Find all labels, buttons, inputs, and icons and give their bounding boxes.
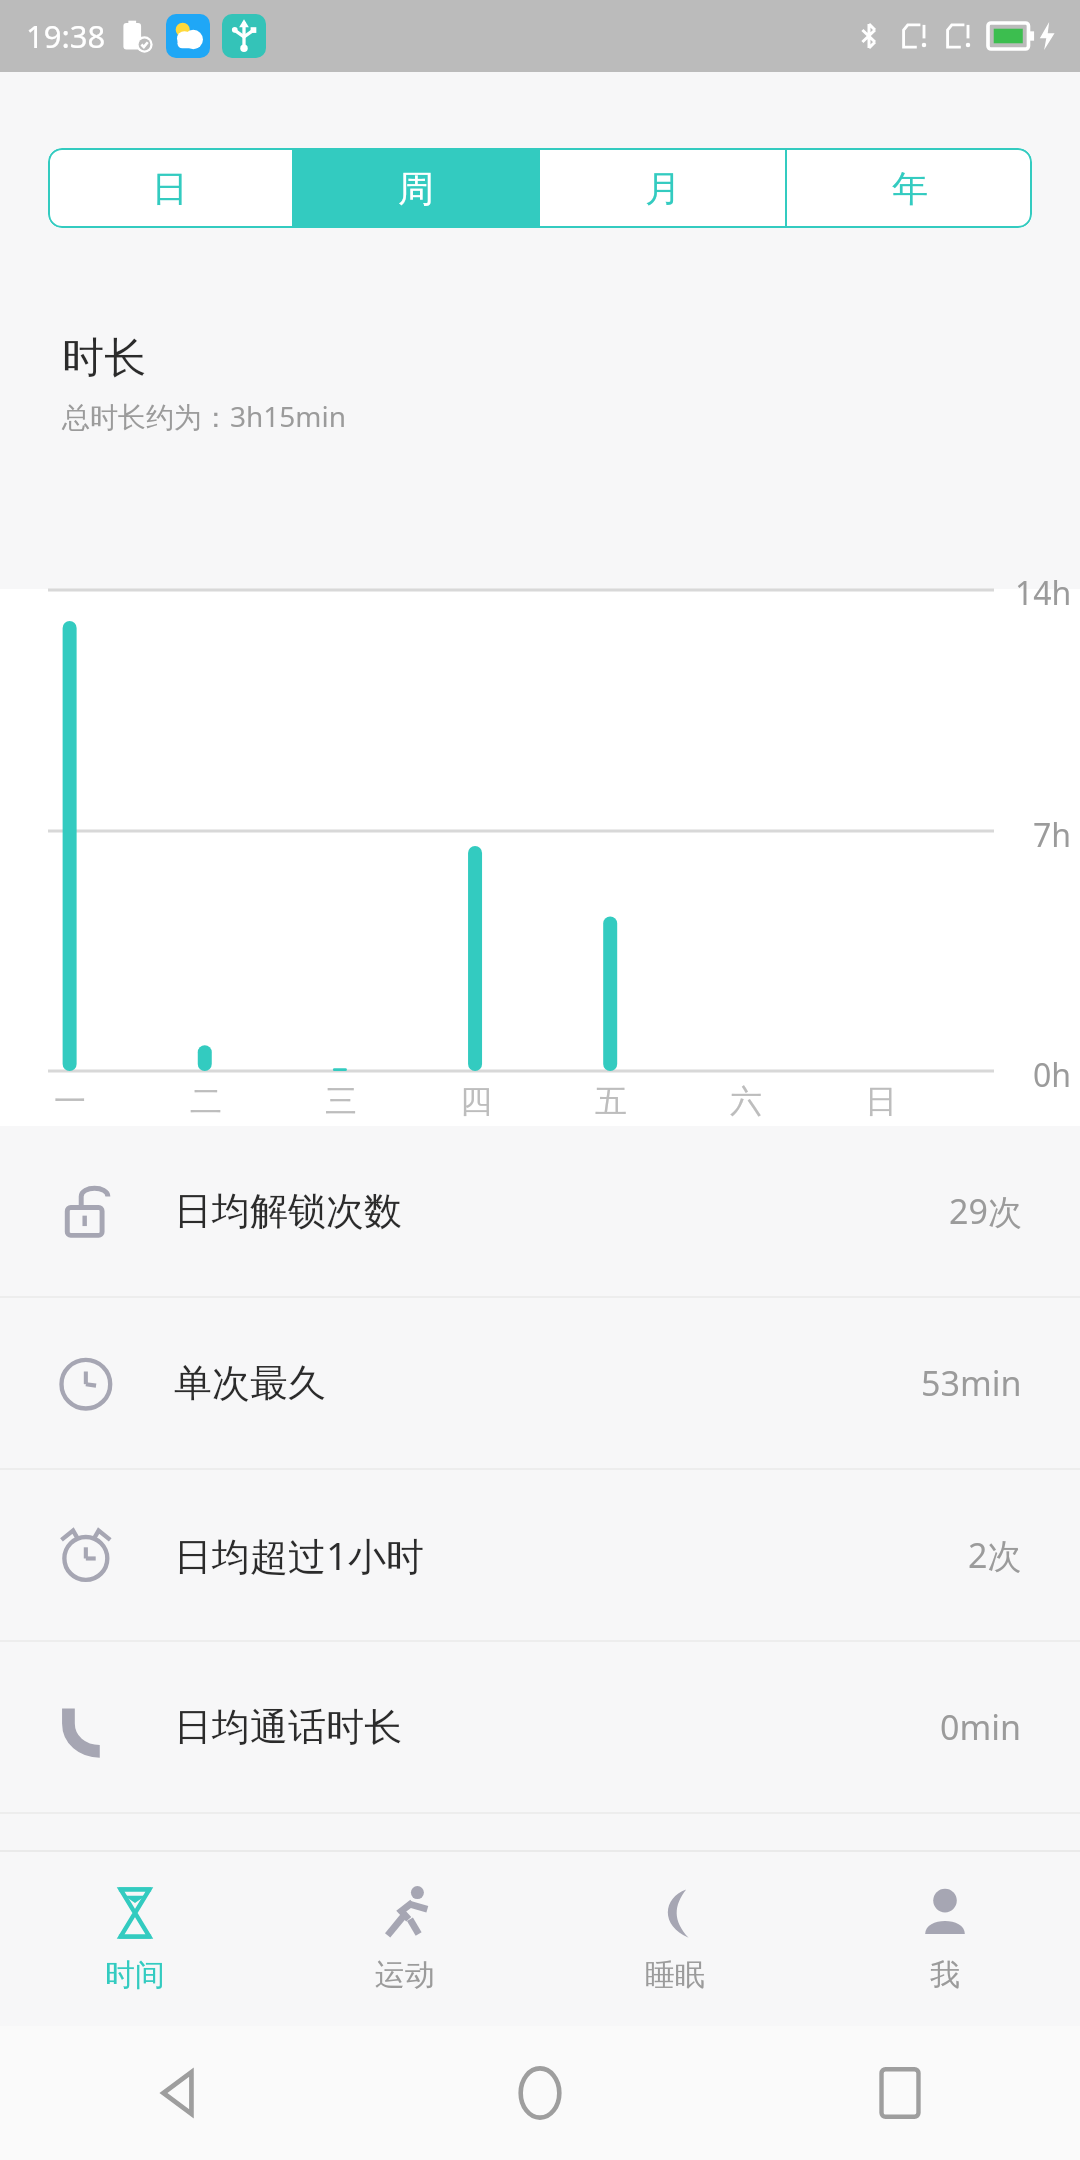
staticText: 单次最久 bbox=[174, 1359, 326, 1407]
button[interactable]: 日均解锁次数 bbox=[0, 1126, 1080, 1296]
button[interactable]: 睡眠 bbox=[540, 1850, 810, 2026]
staticText: 周 bbox=[398, 166, 434, 211]
staticText: 时间 bbox=[105, 1956, 165, 1994]
staticText: 14h bbox=[1015, 571, 1072, 615]
staticText: 六 bbox=[730, 1081, 762, 1121]
staticText: 总时长约为：3h15min bbox=[62, 397, 347, 435]
staticText: 睡眠 bbox=[645, 1956, 705, 1994]
staticText: 53min bbox=[921, 1360, 1022, 1406]
button[interactable]: 时间 bbox=[0, 1850, 270, 2026]
button[interactable]: 日均通话时长 bbox=[0, 1642, 1080, 1812]
staticText: 日 bbox=[152, 166, 188, 211]
staticText: 运动 bbox=[375, 1956, 435, 1994]
staticText: 时长 bbox=[62, 332, 146, 385]
staticText: 一 bbox=[54, 1081, 86, 1121]
staticText: 2次 bbox=[968, 1532, 1022, 1578]
button[interactable]: 单次最久 bbox=[0, 1298, 1080, 1468]
staticText: 日均解锁次数 bbox=[174, 1187, 402, 1235]
button[interactable]: 周 bbox=[294, 148, 538, 228]
button[interactable]: 日均超过1小时 bbox=[0, 1470, 1080, 1640]
button[interactable]: 我 bbox=[810, 1850, 1080, 2026]
staticText: 我 bbox=[930, 1956, 960, 1994]
staticText: 0min bbox=[940, 1704, 1022, 1750]
button[interactable]: 月 bbox=[540, 148, 785, 228]
staticText: 二 bbox=[190, 1081, 222, 1121]
button[interactable]: 日 bbox=[48, 148, 292, 228]
button[interactable]: 运动 bbox=[270, 1850, 540, 2026]
staticText: 三 bbox=[325, 1081, 357, 1121]
staticText: 五 bbox=[595, 1081, 627, 1121]
staticText: 日 bbox=[865, 1081, 897, 1121]
button[interactable]: Recents bbox=[720, 2026, 1080, 2160]
staticText: 月 bbox=[645, 166, 681, 211]
staticText: 日均超过1小时 bbox=[174, 1529, 424, 1581]
button[interactable]: Back bbox=[0, 2026, 360, 2160]
staticText: 29次 bbox=[949, 1188, 1022, 1234]
button[interactable]: Home bbox=[360, 2026, 720, 2160]
staticText: 7h bbox=[1033, 813, 1072, 857]
staticText: 四 bbox=[460, 1081, 492, 1121]
staticText: 19:38 bbox=[26, 15, 106, 57]
staticText: 0h bbox=[1033, 1053, 1072, 1097]
button[interactable]: 年 bbox=[787, 148, 1032, 228]
staticText: 日均通话时长 bbox=[174, 1703, 402, 1751]
staticText: 年 bbox=[892, 166, 928, 211]
